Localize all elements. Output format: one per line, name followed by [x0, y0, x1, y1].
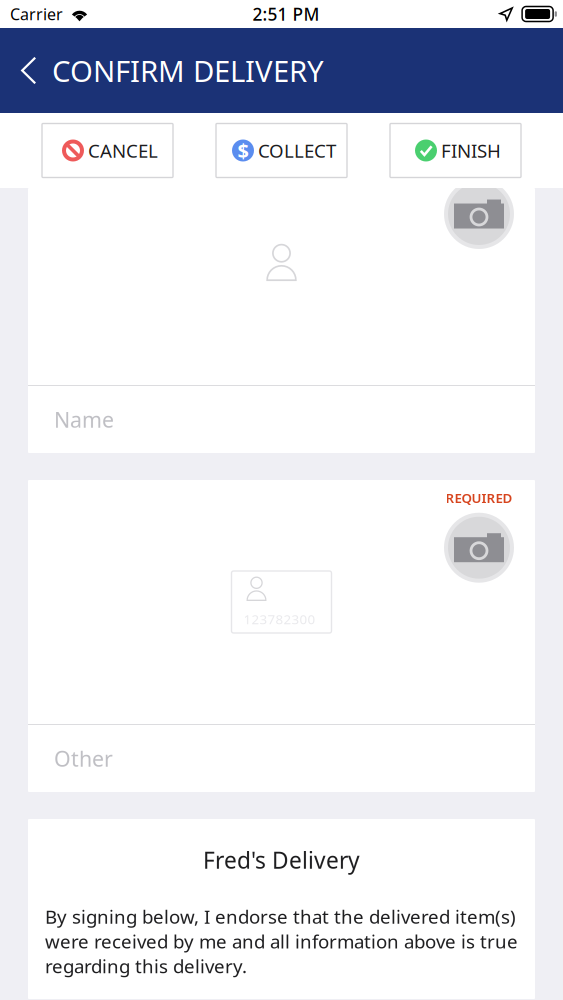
button[interactable]: Take photo — [444, 513, 514, 583]
button[interactable]: Take photo — [444, 179, 514, 249]
staticText: $ — [237, 137, 248, 164]
staticText: Carrier — [10, 3, 63, 25]
button[interactable]: Back — [0, 28, 52, 113]
staticText: Other — [54, 744, 113, 773]
button[interactable]: FINISH — [390, 123, 521, 177]
staticText: REQUIRED — [445, 489, 512, 507]
staticText: CONFIRM DELIVERY — [52, 51, 324, 90]
staticText: Fred's Delivery — [203, 845, 360, 875]
staticText: 2:51 PM — [252, 2, 319, 25]
staticText: FINISH — [441, 138, 501, 163]
button[interactable]: $ — [216, 123, 347, 177]
button[interactable]: CANCEL — [42, 123, 173, 177]
staticText: By signing below, I endorse that the del… — [45, 904, 518, 978]
staticText: 123782300 — [243, 610, 315, 628]
staticText: CANCEL — [88, 138, 158, 163]
staticText: Name — [54, 405, 114, 434]
staticText: COLLECT — [258, 138, 336, 163]
